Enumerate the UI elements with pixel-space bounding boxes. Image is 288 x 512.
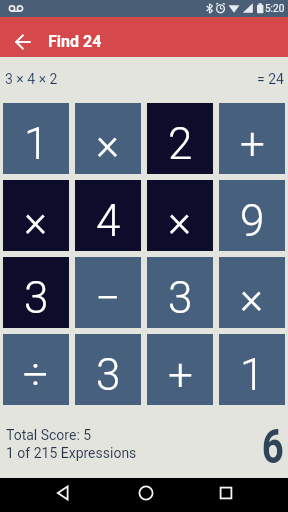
staticText: −	[95, 272, 121, 324]
staticText: ×	[24, 195, 48, 247]
button[interactable]: 4	[75, 180, 141, 251]
button[interactable]: 2	[147, 103, 213, 174]
button[interactable]	[51, 481, 75, 505]
button[interactable]	[214, 481, 238, 505]
button[interactable]: ÷	[3, 334, 69, 405]
button[interactable]: +	[147, 334, 213, 405]
button[interactable]: −	[75, 257, 141, 328]
button[interactable]: ×	[219, 257, 285, 328]
button[interactable]: 3	[75, 334, 141, 405]
staticText: = 24	[257, 71, 284, 87]
staticText: 3	[96, 349, 121, 401]
staticText: Total Score: 5	[6, 427, 92, 443]
button[interactable]: 1	[3, 103, 69, 174]
button[interactable]: 1	[219, 334, 285, 405]
button[interactable]: 9	[219, 180, 285, 251]
staticText: 6	[262, 418, 284, 474]
staticText: 1 of 215 Expressions	[6, 445, 137, 461]
staticText: Find 24	[48, 32, 102, 51]
staticText: ×	[240, 272, 264, 324]
button[interactable]: ×	[3, 180, 69, 251]
button[interactable]: +	[219, 103, 285, 174]
staticText: ×	[96, 118, 120, 170]
button[interactable]: ×	[147, 180, 213, 251]
staticText: 1	[240, 349, 265, 401]
button[interactable]: ×	[75, 103, 141, 174]
staticText: ÷	[23, 349, 49, 401]
button[interactable]: 3	[3, 257, 69, 328]
button[interactable]	[134, 481, 158, 505]
staticText: 5:20	[265, 3, 285, 15]
staticText: 2	[168, 118, 193, 170]
staticText: 3	[24, 272, 49, 324]
staticText: 3	[168, 272, 193, 324]
staticText: ×	[168, 195, 192, 247]
staticText: +	[240, 118, 265, 170]
button[interactable]: 3	[147, 257, 213, 328]
staticText: +	[168, 349, 193, 401]
staticText: 4	[96, 195, 121, 247]
button[interactable]	[9, 28, 37, 56]
staticText: 9	[240, 195, 265, 247]
staticText: 3 × 4 × 2	[5, 71, 58, 87]
staticText: 1	[24, 118, 49, 170]
